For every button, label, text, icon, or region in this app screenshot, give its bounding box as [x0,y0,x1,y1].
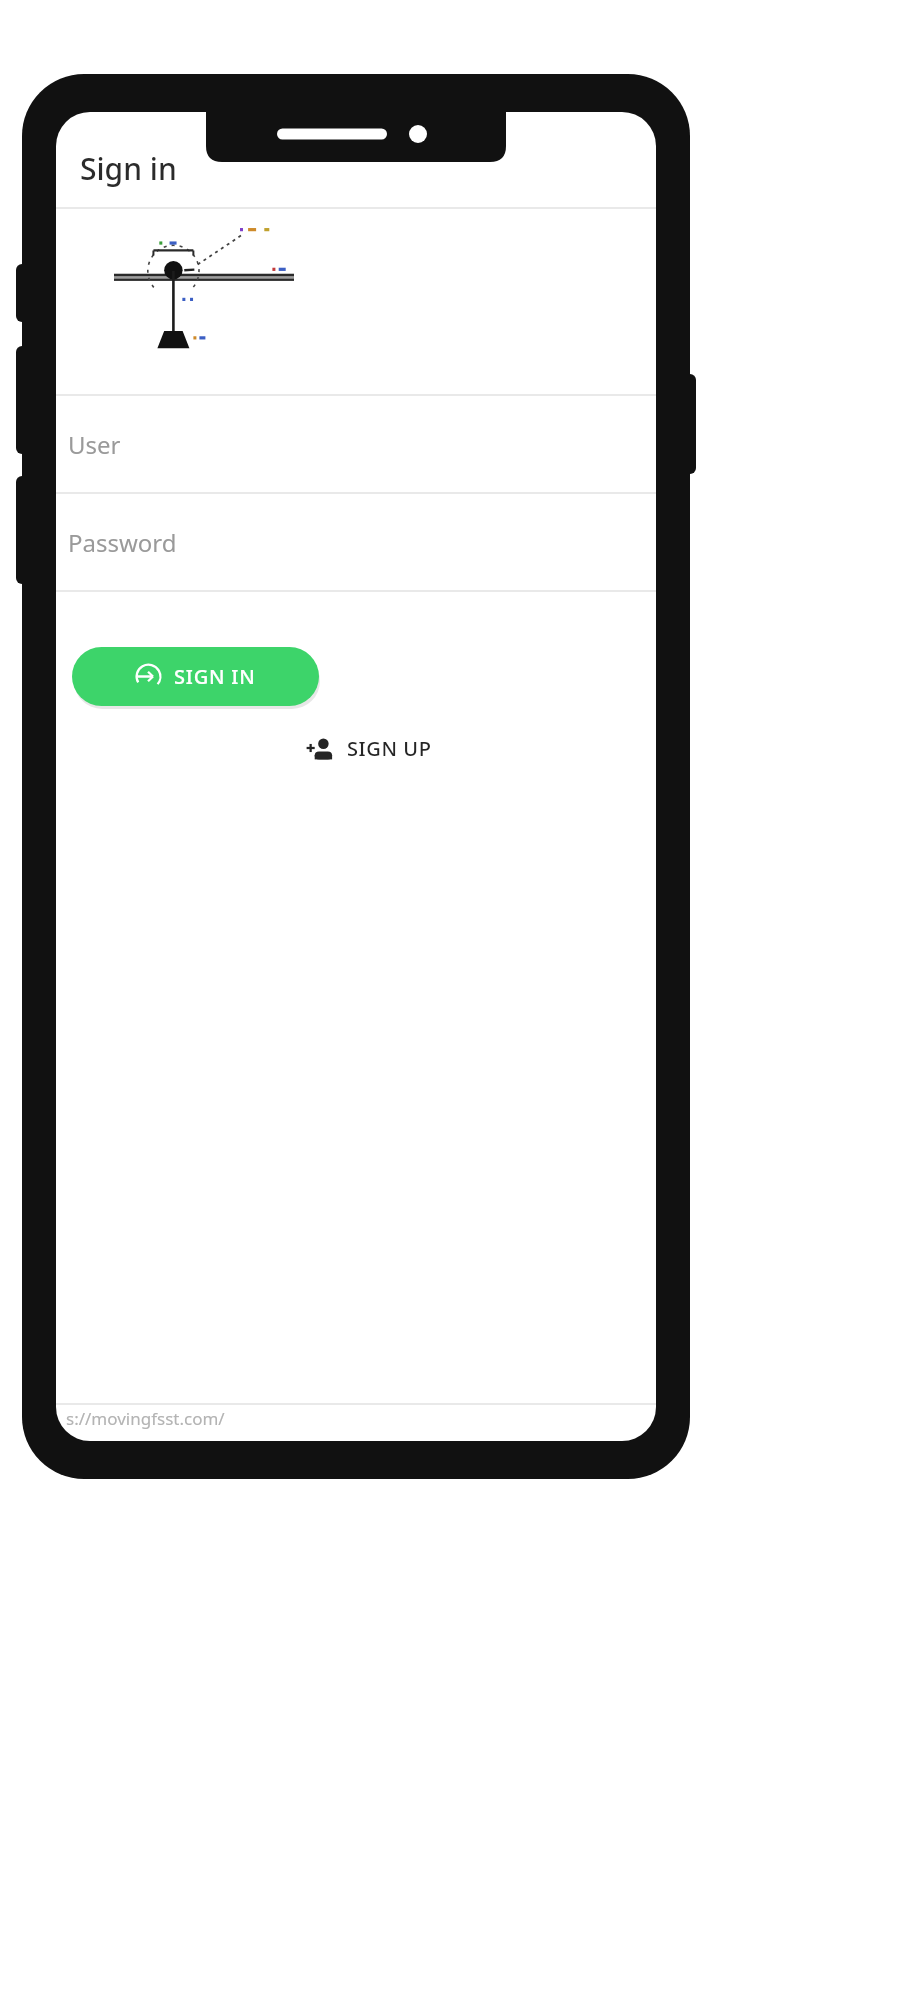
staticText: Sign in [80,148,177,189]
button[interactable]: User [56,396,656,492]
button[interactable]: Sign up [300,729,438,767]
button[interactable]: SIGN IN [72,647,319,706]
other: Sign up [306,733,336,763]
staticText: SIGN IN [174,663,256,690]
staticText: Password [68,526,177,559]
staticText: SIGN UP [347,735,432,762]
button[interactable]: Password [56,494,656,590]
staticText: User [68,428,121,461]
staticText: s://movingfsst.com/ [66,1407,225,1430]
